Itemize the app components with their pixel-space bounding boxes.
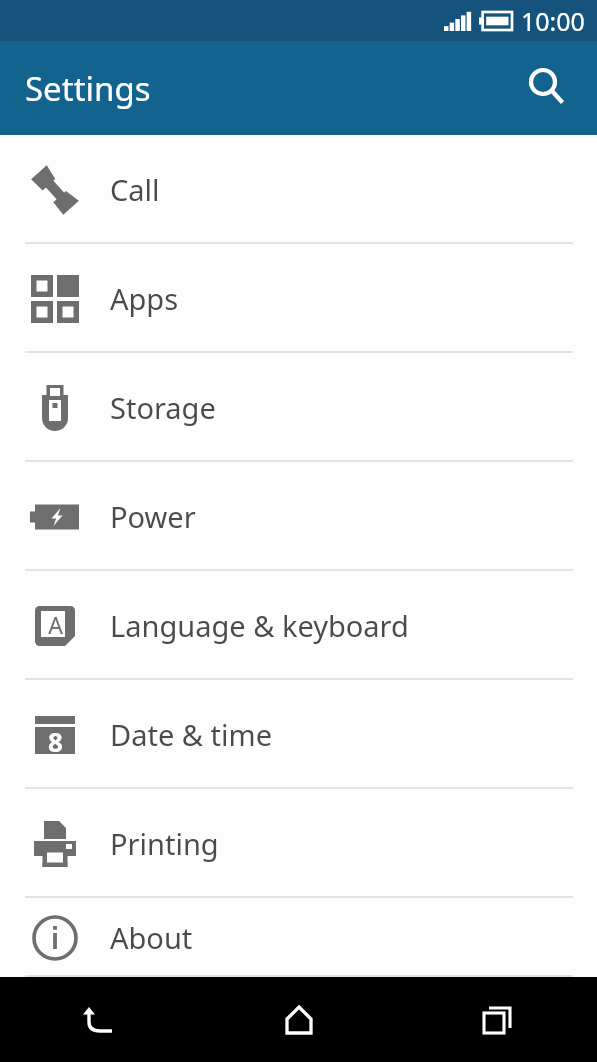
button[interactable]: Printing bbox=[0, 789, 597, 898]
staticText: Printing bbox=[110, 824, 219, 863]
staticText: Power bbox=[110, 497, 196, 536]
staticText: 10:00 bbox=[521, 4, 585, 38]
button[interactable]: Search bbox=[517, 57, 579, 119]
button[interactable]: A bbox=[0, 571, 597, 680]
button[interactable]: Call bbox=[0, 135, 597, 244]
staticText: Date & time bbox=[110, 715, 272, 754]
staticText: Storage bbox=[110, 388, 216, 427]
button[interactable]: Storage bbox=[0, 353, 597, 462]
button[interactable]: Back bbox=[0, 977, 199, 1062]
button[interactable]: Recent apps bbox=[398, 977, 597, 1062]
staticText: A bbox=[48, 609, 63, 640]
staticText: 8 bbox=[48, 724, 63, 759]
staticText: Settings bbox=[25, 66, 151, 111]
staticText: Language & keyboard bbox=[110, 606, 409, 645]
staticText: About bbox=[110, 918, 193, 957]
button[interactable]: Apps bbox=[0, 244, 597, 353]
staticText: Call bbox=[110, 170, 160, 209]
button[interactable]: About bbox=[0, 898, 597, 977]
button[interactable]: Power bbox=[0, 462, 597, 571]
staticText: Apps bbox=[110, 279, 179, 318]
button[interactable]: Home bbox=[199, 977, 398, 1062]
button[interactable]: 8 bbox=[0, 680, 597, 789]
